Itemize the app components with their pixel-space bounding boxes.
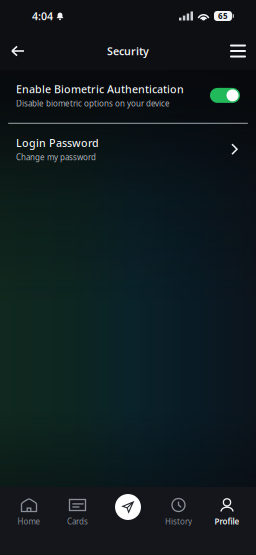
button[interactable]: Send: [113, 492, 143, 522]
staticText: 4:04: [32, 9, 53, 23]
staticText: Cards: [67, 516, 88, 527]
button[interactable]: Back: [1, 34, 35, 68]
staticText: Home: [17, 516, 40, 527]
button[interactable]: Menu: [221, 34, 255, 68]
button[interactable]: Home: [0, 498, 58, 527]
button[interactable]: Cards: [58, 498, 97, 527]
staticText: Disable biometric options on your device: [16, 98, 170, 109]
staticText: History: [165, 516, 192, 527]
button[interactable]: Enable Biometric Authentication: [0, 70, 256, 123]
button[interactable]: Profile: [199, 498, 255, 527]
staticText: 65: [218, 11, 228, 21]
staticText: Profile: [214, 516, 239, 527]
staticText: Security: [107, 44, 149, 58]
button[interactable]: Login Password: [0, 124, 256, 177]
button[interactable]: History: [158, 498, 199, 527]
staticText: Change my password: [16, 152, 96, 163]
staticText: Login Password: [16, 136, 99, 150]
staticText: Enable Biometric Authentication: [16, 82, 184, 96]
